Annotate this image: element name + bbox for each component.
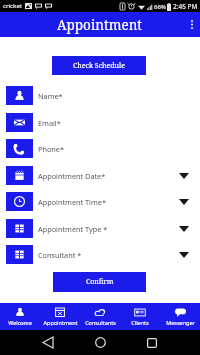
staticText: Name*: [38, 91, 63, 101]
staticText: Messenger: [166, 319, 195, 326]
button[interactable]: Phone*: [0, 139, 200, 158]
staticText: Consultants: [85, 319, 116, 326]
button[interactable]: Back: [36, 332, 60, 353]
button[interactable]: Appointment Type *: [0, 219, 200, 238]
button[interactable]: Clients: [120, 303, 160, 330]
staticText: 66%: [154, 3, 166, 11]
staticText: Consultant *: [38, 250, 82, 260]
button[interactable]: Welcome: [0, 303, 40, 330]
button[interactable]: Appointment Date*: [0, 166, 200, 185]
button[interactable]: Consultant *: [0, 245, 200, 264]
staticText: Appointment Date*: [38, 171, 106, 181]
staticText: Confirm: [86, 277, 114, 287]
staticText: Appointment Time*: [38, 197, 106, 207]
staticText: 2:45 PM: [173, 2, 198, 11]
button[interactable]: Appointment: [40, 303, 80, 330]
staticText: cricket: [3, 2, 23, 10]
button[interactable]: Recent apps: [140, 332, 164, 353]
button[interactable]: Consultants: [80, 303, 120, 330]
button[interactable]: Home: [88, 332, 112, 353]
staticText: Phone*: [38, 144, 64, 154]
button[interactable]: Appointment Time*: [0, 192, 200, 211]
staticText: Appointment Type *: [38, 224, 108, 234]
staticText: Appointment: [43, 319, 78, 326]
staticText: Email*: [38, 118, 61, 128]
button[interactable]: Check Schedule: [52, 56, 146, 75]
button[interactable]: Email*: [0, 113, 200, 132]
staticText: Appointment: [57, 16, 143, 34]
staticText: Welcome: [8, 319, 32, 326]
button[interactable]: More options: [184, 12, 200, 37]
button[interactable]: Name*: [0, 86, 200, 105]
staticText: Check Schedule: [73, 61, 125, 71]
staticText: Clients: [131, 319, 149, 326]
button[interactable]: Confirm: [53, 272, 146, 292]
button[interactable]: Messenger: [160, 303, 200, 330]
